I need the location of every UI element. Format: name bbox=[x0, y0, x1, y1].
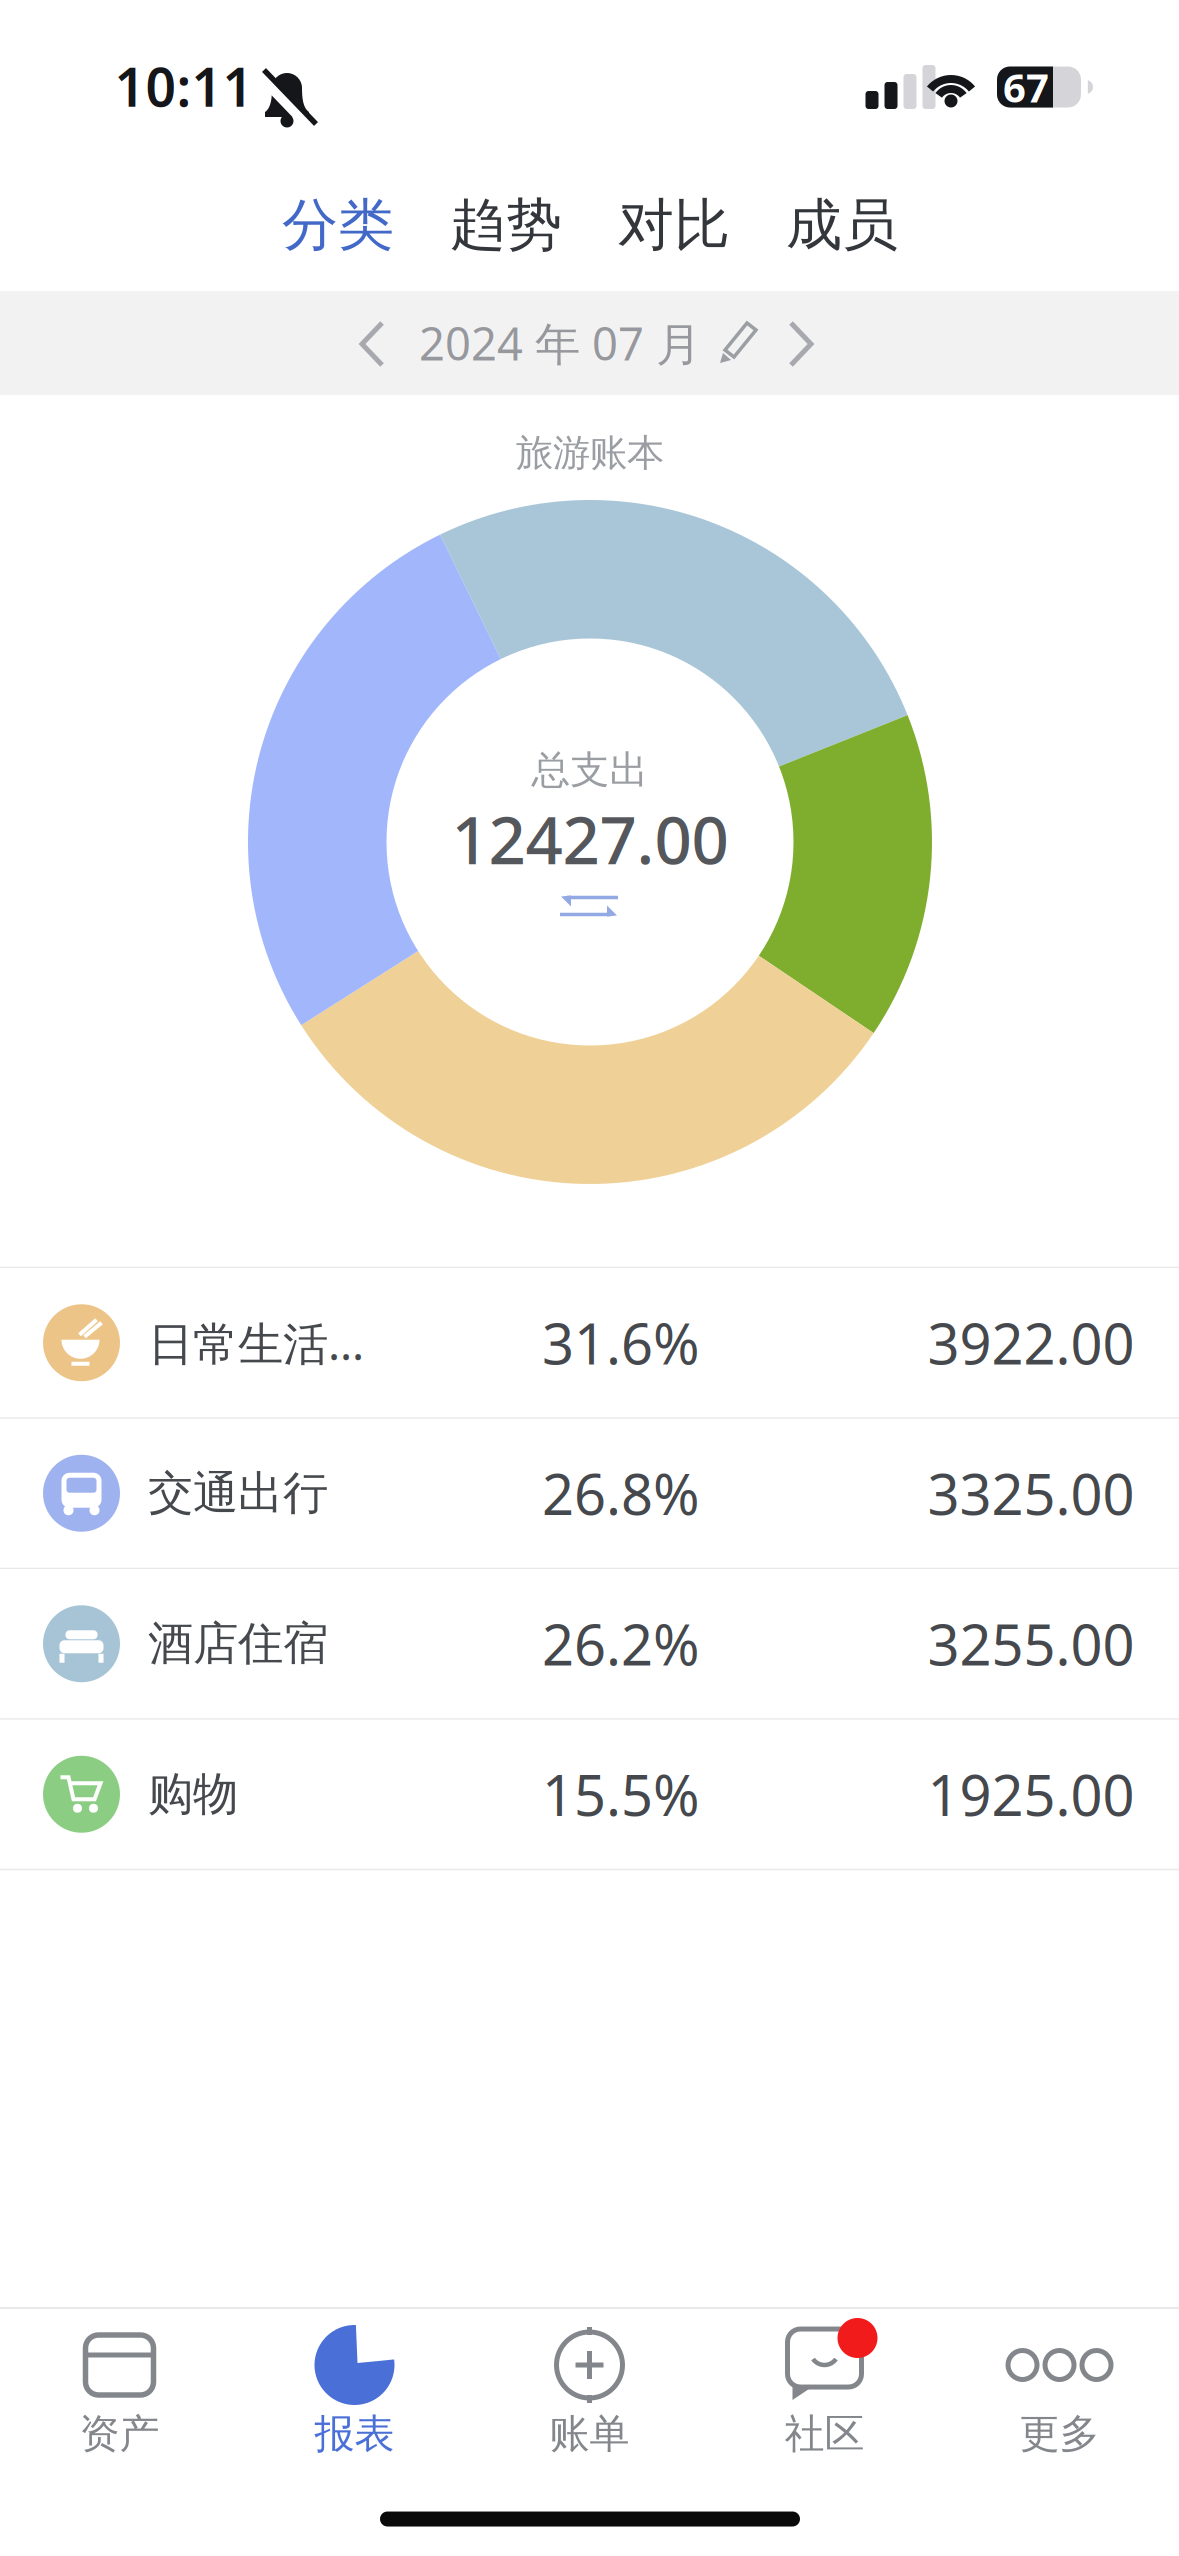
staticText: 31.6% bbox=[542, 1306, 700, 1380]
button[interactable]: 账单 bbox=[472, 2309, 707, 2479]
button[interactable]: 交通出行 bbox=[0, 1419, 1179, 1568]
staticText: 成员 bbox=[786, 191, 898, 259]
staticText: 总支出 bbox=[531, 746, 648, 794]
staticText: 日常生活... bbox=[148, 1313, 364, 1373]
button[interactable]: 社区 bbox=[707, 2309, 942, 2479]
staticText: 更多 bbox=[1019, 2409, 1099, 2458]
staticText: 交通出行 bbox=[148, 1465, 328, 1521]
staticText: 2024 年 07 月 bbox=[419, 313, 701, 373]
staticText: 3255.00 bbox=[927, 1607, 1134, 1681]
staticText: 购物 bbox=[148, 1766, 238, 1822]
button[interactable]: 资产 bbox=[2, 2309, 237, 2479]
staticText: 社区 bbox=[784, 2409, 864, 2458]
button[interactable]: 购物 bbox=[0, 1720, 1179, 1869]
staticText: 资产 bbox=[79, 2409, 159, 2458]
button[interactable]: 分类 bbox=[282, 191, 394, 259]
staticText: 酒店住宿 bbox=[148, 1616, 328, 1672]
staticText: 对比 bbox=[618, 191, 730, 259]
staticText: 26.2% bbox=[542, 1607, 700, 1681]
button[interactable]: 选择月份 bbox=[419, 313, 761, 373]
button[interactable]: 对比 bbox=[618, 191, 730, 259]
staticText: 旅游账本 bbox=[516, 430, 664, 476]
staticText: 15.5% bbox=[542, 1757, 700, 1831]
button[interactable]: 上个月 bbox=[340, 312, 404, 376]
staticText: 账单 bbox=[549, 2409, 629, 2458]
staticText: 12427.00 bbox=[451, 796, 728, 882]
staticText: 3325.00 bbox=[927, 1456, 1134, 1530]
button[interactable]: 趋势 bbox=[450, 191, 562, 259]
button[interactable]: 更多 bbox=[942, 2309, 1177, 2479]
button[interactable]: 日常生活... bbox=[0, 1268, 1179, 1417]
staticText: 26.8% bbox=[542, 1456, 700, 1530]
staticText: 10:11 bbox=[114, 51, 253, 121]
button[interactable]: 切换收支 bbox=[560, 894, 618, 917]
staticText: 67 bbox=[1003, 60, 1049, 113]
staticText: 分类 bbox=[282, 191, 394, 259]
staticText: 趋势 bbox=[450, 191, 562, 259]
staticText: 3922.00 bbox=[927, 1306, 1134, 1380]
button[interactable]: 酒店住宿 bbox=[0, 1569, 1179, 1718]
button[interactable]: 报表 bbox=[237, 2309, 472, 2479]
button[interactable]: 成员 bbox=[786, 191, 898, 259]
staticText: 报表 bbox=[314, 2409, 394, 2458]
staticText: 1925.00 bbox=[927, 1757, 1134, 1831]
button[interactable]: 下个月 bbox=[769, 312, 833, 376]
